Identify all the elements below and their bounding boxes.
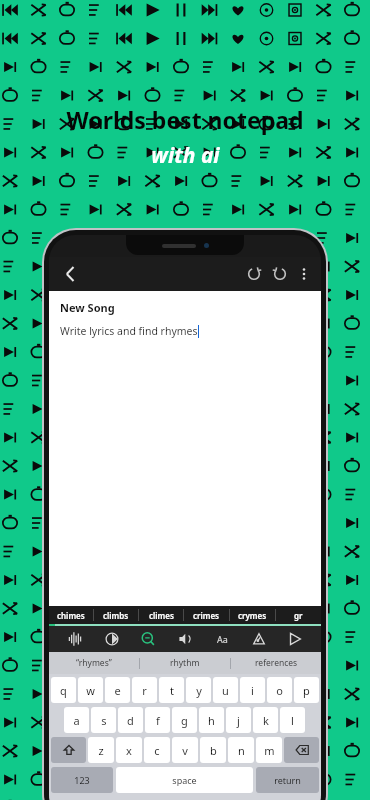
staticText: i: [251, 683, 254, 698]
button[interactable]: climes: [139, 606, 183, 624]
staticText: u: [222, 683, 229, 698]
staticText: gr: [294, 610, 303, 621]
button[interactable]: h: [199, 707, 224, 733]
staticText: l: [291, 713, 294, 728]
button[interactable]: Waveform: [64, 628, 86, 650]
button[interactable]: Aa: [211, 628, 233, 650]
button[interactable]: rhythm: [140, 652, 230, 674]
staticText: references: [255, 657, 298, 669]
button[interactable]: d: [118, 707, 143, 733]
staticText: with ai: [151, 141, 220, 170]
button[interactable]: s: [91, 707, 116, 733]
staticText: k: [263, 713, 269, 728]
staticText: 123: [74, 774, 90, 786]
button[interactable]: f: [145, 707, 170, 733]
button[interactable]: c: [144, 737, 170, 763]
button[interactable]: crymes: [230, 606, 275, 624]
staticText: crymes: [238, 610, 267, 621]
button[interactable]: gr: [276, 606, 321, 624]
staticText: y: [196, 683, 202, 698]
button[interactable]: Rhymes: [137, 628, 159, 650]
button[interactable]: p: [294, 677, 319, 703]
button[interactable]: “rhymes”: [49, 652, 139, 674]
button[interactable]: g: [172, 707, 197, 733]
button[interactable]: chimes: [49, 606, 93, 624]
button[interactable]: r: [132, 677, 157, 703]
button[interactable]: z: [88, 737, 114, 763]
button[interactable]: Speak: [174, 628, 196, 650]
staticText: z: [98, 743, 104, 758]
button[interactable]: n: [228, 737, 254, 763]
button[interactable]: references: [231, 652, 321, 674]
button[interactable]: e: [105, 677, 130, 703]
staticText: b: [210, 743, 217, 758]
staticText: return: [274, 774, 301, 786]
staticText: rhythm: [170, 657, 200, 669]
staticText: chimes: [57, 610, 85, 621]
button[interactable]: o: [267, 677, 292, 703]
staticText: j: [237, 713, 240, 728]
button[interactable]: y: [186, 677, 211, 703]
staticText: d: [127, 713, 134, 728]
staticText: “rhymes”: [76, 657, 112, 669]
button[interactable]: Shift: [51, 737, 86, 763]
staticText: x: [126, 743, 132, 758]
button[interactable]: l: [280, 707, 305, 733]
button[interactable]: Play: [284, 628, 306, 650]
button[interactable]: x: [116, 737, 142, 763]
staticText: crimes: [193, 610, 220, 621]
staticText: New Song: [60, 300, 115, 315]
button[interactable]: j: [226, 707, 251, 733]
button[interactable]: i: [240, 677, 265, 703]
staticText: a: [73, 713, 80, 728]
staticText: t: [170, 683, 174, 698]
staticText: climes: [149, 610, 174, 621]
staticText: r: [142, 683, 147, 698]
staticText: g: [181, 713, 188, 728]
button[interactable]: m: [256, 737, 282, 763]
staticText: o: [276, 683, 283, 698]
staticText: q: [60, 683, 67, 698]
staticText: f: [156, 713, 160, 728]
button[interactable]: q: [51, 677, 76, 703]
button[interactable]: Back: [57, 260, 85, 288]
button[interactable]: Chords: [248, 628, 270, 650]
staticText: m: [264, 743, 275, 758]
button[interactable]: space: [116, 767, 253, 793]
staticText: c: [154, 743, 160, 758]
button[interactable]: More options: [293, 263, 315, 285]
staticText: Aa: [217, 633, 228, 645]
staticText: space: [172, 774, 197, 786]
button[interactable]: u: [213, 677, 238, 703]
button[interactable]: a: [64, 707, 89, 733]
staticText: v: [182, 743, 188, 758]
button[interactable]: Undo: [241, 261, 267, 287]
staticText: h: [208, 713, 215, 728]
button[interactable]: Backspace: [284, 737, 319, 763]
staticText: n: [238, 743, 245, 758]
staticText: p: [303, 683, 310, 698]
button[interactable]: crimes: [184, 606, 229, 624]
button[interactable]: b: [200, 737, 226, 763]
button[interactable]: 123: [51, 767, 113, 793]
button[interactable]: return: [256, 767, 319, 793]
staticText: Worlds best notepad: [66, 104, 304, 135]
button[interactable]: k: [253, 707, 278, 733]
button[interactable]: climbs: [94, 606, 138, 624]
staticText: climbs: [103, 610, 129, 621]
button[interactable]: Redo: [267, 261, 293, 287]
button[interactable]: w: [78, 677, 103, 703]
staticText: w: [86, 683, 95, 698]
button[interactable]: Brain: [101, 628, 123, 650]
button[interactable]: v: [172, 737, 198, 763]
staticText: s: [101, 713, 107, 728]
staticText: e: [114, 683, 121, 698]
staticText: Write lyrics and find rhymes: [60, 324, 198, 338]
button[interactable]: t: [159, 677, 184, 703]
